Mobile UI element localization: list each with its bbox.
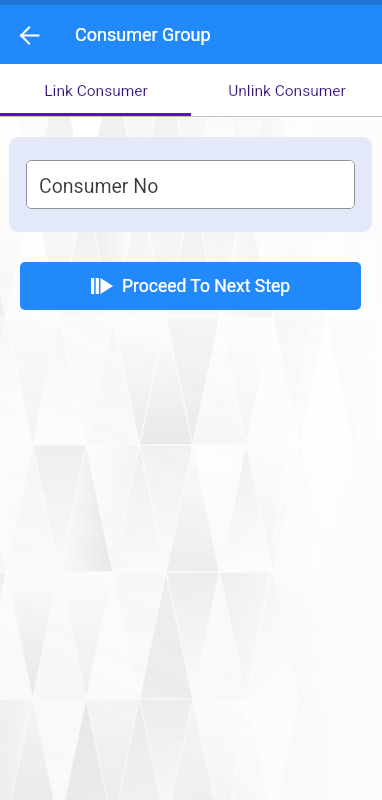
button[interactable]: Consumer No: [26, 160, 355, 209]
staticText: Consumer Group: [75, 24, 211, 45]
button[interactable]: Link Consumer: [0, 67, 191, 114]
staticText: Proceed To Next Step: [122, 276, 291, 297]
staticText: Unlink Consumer: [228, 82, 346, 100]
button[interactable]: Back: [7, 13, 51, 57]
button[interactable]: Unlink Consumer: [191, 67, 382, 114]
staticText: Consumer No: [39, 175, 159, 198]
button[interactable]: Proceed To Next Step: [20, 262, 361, 310]
staticText: Link Consumer: [44, 82, 148, 100]
